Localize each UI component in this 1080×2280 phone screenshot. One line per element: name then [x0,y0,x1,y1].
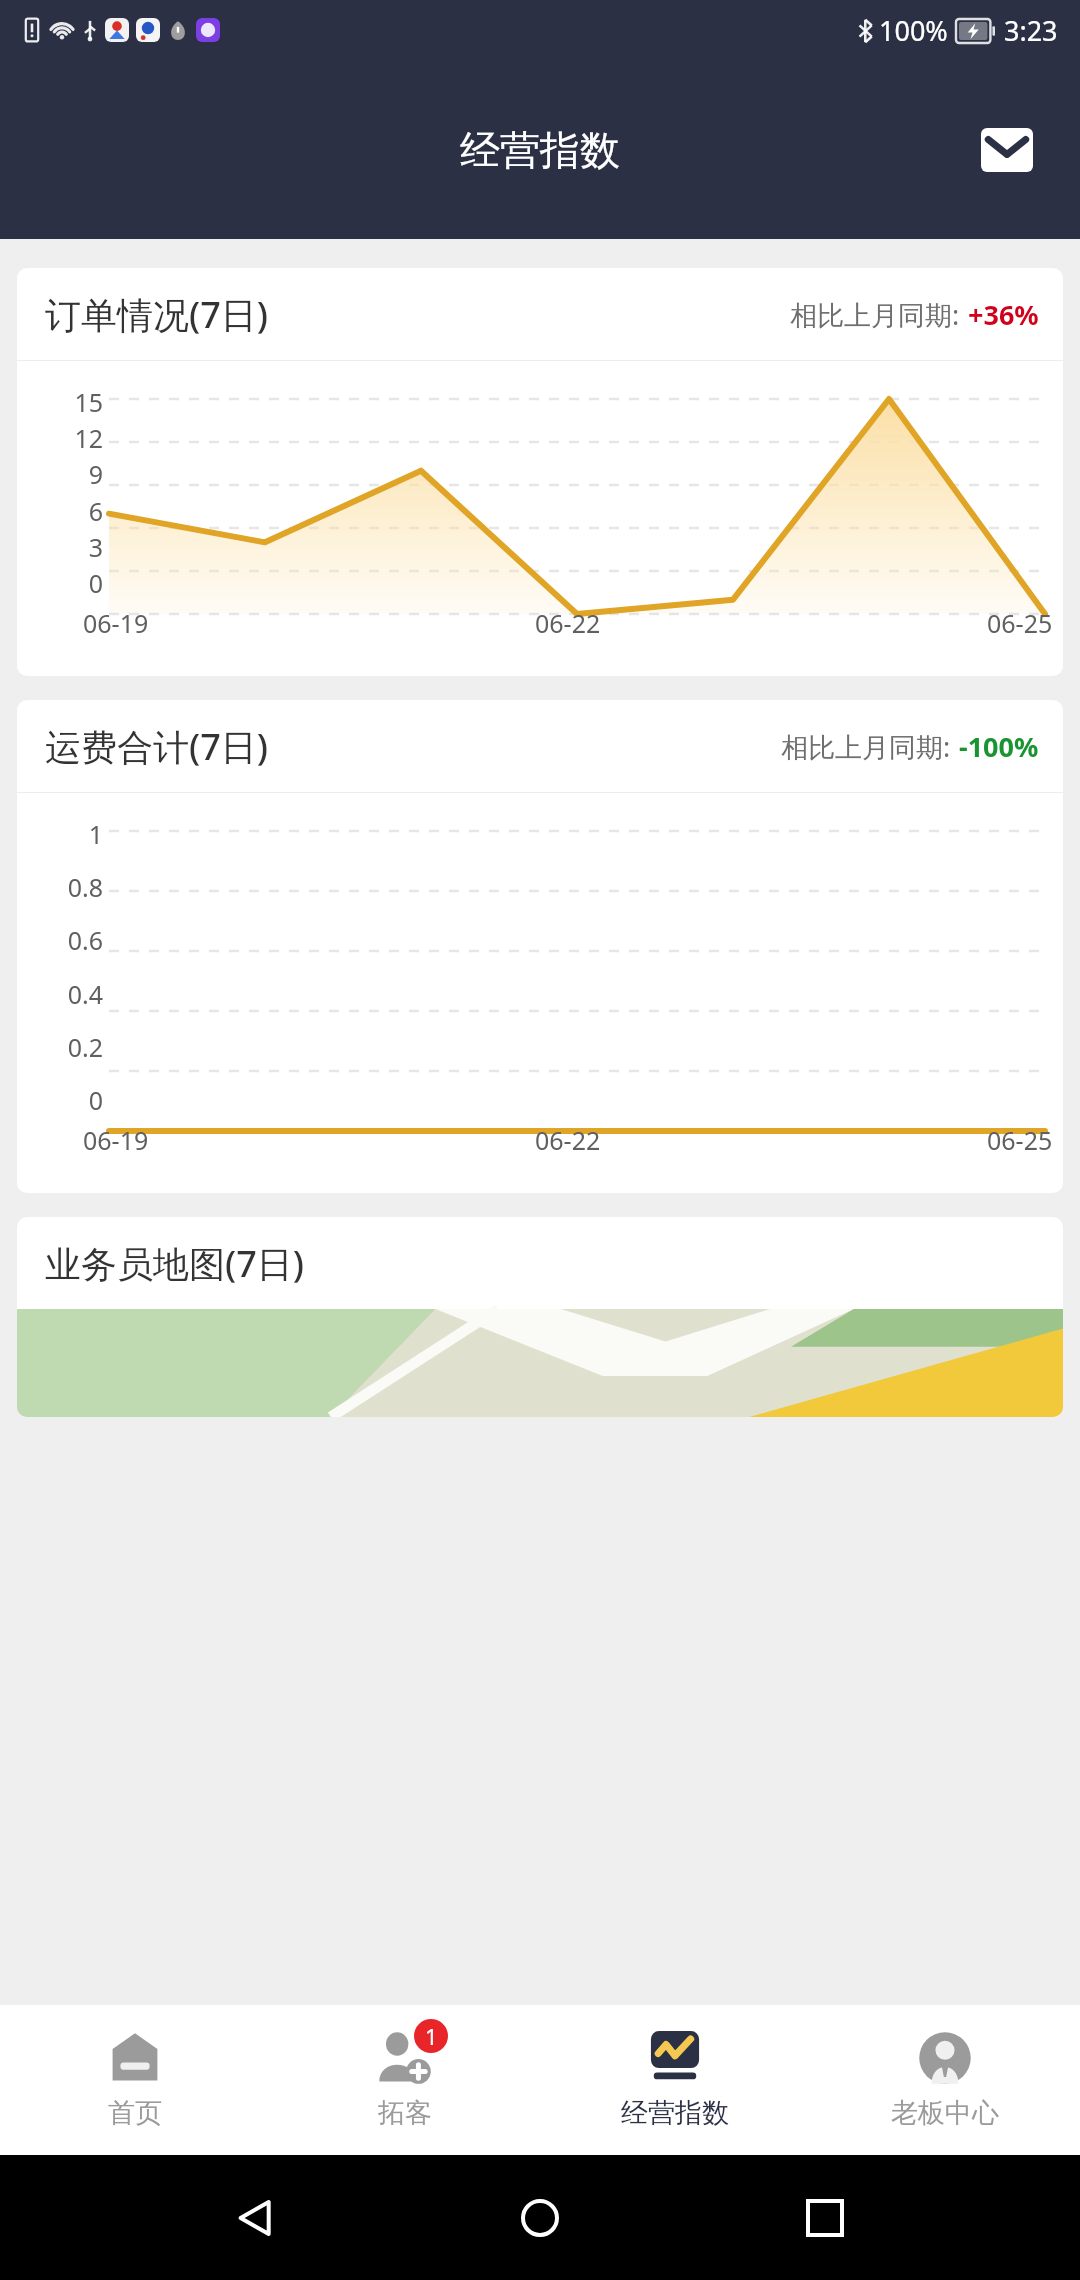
staticText: -100% [959,728,1039,765]
staticText: 100% [879,12,948,49]
staticText: 0.8 [67,870,103,904]
staticText: 6 [88,494,103,528]
button[interactable]: 运费合计(7日) [17,700,1063,1193]
staticText: 经营指数 [621,2096,729,2130]
staticText: 经营指数 [460,125,620,175]
staticText: 12 [74,421,103,455]
staticText: 订单情况(7日) [45,290,269,339]
staticText: 相比上月同期: [790,296,960,333]
button[interactable]: 经营指数 [540,2005,810,2155]
staticText: 06-22 [535,1123,601,1157]
staticText: 相比上月同期: [781,728,951,765]
staticText: 06-19 [83,1123,149,1157]
staticText: 0.6 [67,923,103,957]
button[interactable]: Home [510,2188,570,2248]
button[interactable]: Messages [979,124,1035,176]
staticText: 3:23 [1004,12,1058,49]
staticText: 3 [88,530,103,564]
button[interactable]: 首页 [0,2005,270,2155]
staticText: 06-25 [987,1123,1053,1157]
button[interactable]: Recents [795,2188,855,2248]
staticText: +36% [968,296,1039,333]
staticText: 06-25 [987,606,1053,640]
staticText: 0 [88,566,103,600]
staticText: 1 [88,817,103,851]
staticText: 老板中心 [891,2096,999,2130]
button[interactable]: 老板中心 [810,2005,1080,2155]
button[interactable]: 1 [270,2005,540,2155]
button[interactable]: 业务员地图(7日) [17,1217,1063,1417]
staticText: 06-19 [83,606,149,640]
button[interactable]: 订单情况(7日) [17,268,1063,676]
staticText: 1 [425,2021,438,2051]
staticText: 9 [88,457,103,491]
staticText: 运费合计(7日) [45,722,269,771]
staticText: 15 [74,385,103,419]
staticText: 0.2 [67,1030,103,1064]
staticText: 0 [88,1083,103,1117]
staticText: 0.4 [67,977,103,1011]
staticText: 业务员地图(7日) [45,1239,305,1288]
staticText: 06-22 [535,606,601,640]
staticText: 拓客 [378,2096,432,2130]
button[interactable]: Back [225,2188,285,2248]
staticText: 首页 [108,2096,162,2130]
